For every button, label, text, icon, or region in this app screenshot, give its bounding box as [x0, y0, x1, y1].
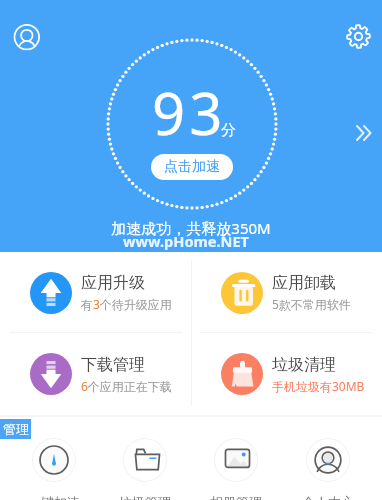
- staticText: 应用升级: [81, 273, 145, 293]
- staticText: www.pHome.NET: [123, 231, 250, 251]
- button[interactable]: 垃圾管理: [99, 438, 190, 500]
- staticText: 加速成功，共释放350M: [0, 218, 382, 238]
- button[interactable]: More: [352, 120, 378, 146]
- button[interactable]: Settings: [346, 24, 371, 49]
- button[interactable]: 相册管理: [190, 438, 282, 500]
- button[interactable]: 应用升级: [0, 252, 191, 333]
- staticText: 一键加速: [28, 494, 80, 500]
- button[interactable]: Account: [13, 23, 41, 51]
- staticText: 管理: [3, 421, 29, 437]
- button[interactable]: 一键加速: [8, 438, 99, 500]
- button[interactable]: 下载管理: [0, 333, 191, 415]
- staticText: 垃圾管理: [119, 494, 171, 500]
- staticText: 下载管理: [81, 355, 145, 375]
- staticText: 垃圾清理: [272, 355, 336, 375]
- staticText: 93: [152, 73, 227, 152]
- staticText: 相册管理: [210, 494, 262, 500]
- button[interactable]: 应用卸载: [191, 252, 382, 333]
- button[interactable]: 垃圾清理: [191, 333, 382, 415]
- staticText: 分: [221, 121, 236, 140]
- staticText: 5款不常用软件: [272, 296, 351, 312]
- staticText: 点击加速: [164, 158, 220, 176]
- staticText: 手机垃圾有30MB: [272, 378, 365, 394]
- staticText: 6个应用正在下载: [81, 378, 172, 394]
- button[interactable]: 管理: [0, 419, 31, 439]
- button[interactable]: 个人中心: [282, 438, 374, 500]
- staticText: 应用卸载: [272, 273, 336, 293]
- staticText: 个人中心: [302, 494, 354, 500]
- button[interactable]: 点击加速: [151, 154, 233, 180]
- staticText: 有3个待升级应用: [81, 296, 172, 312]
